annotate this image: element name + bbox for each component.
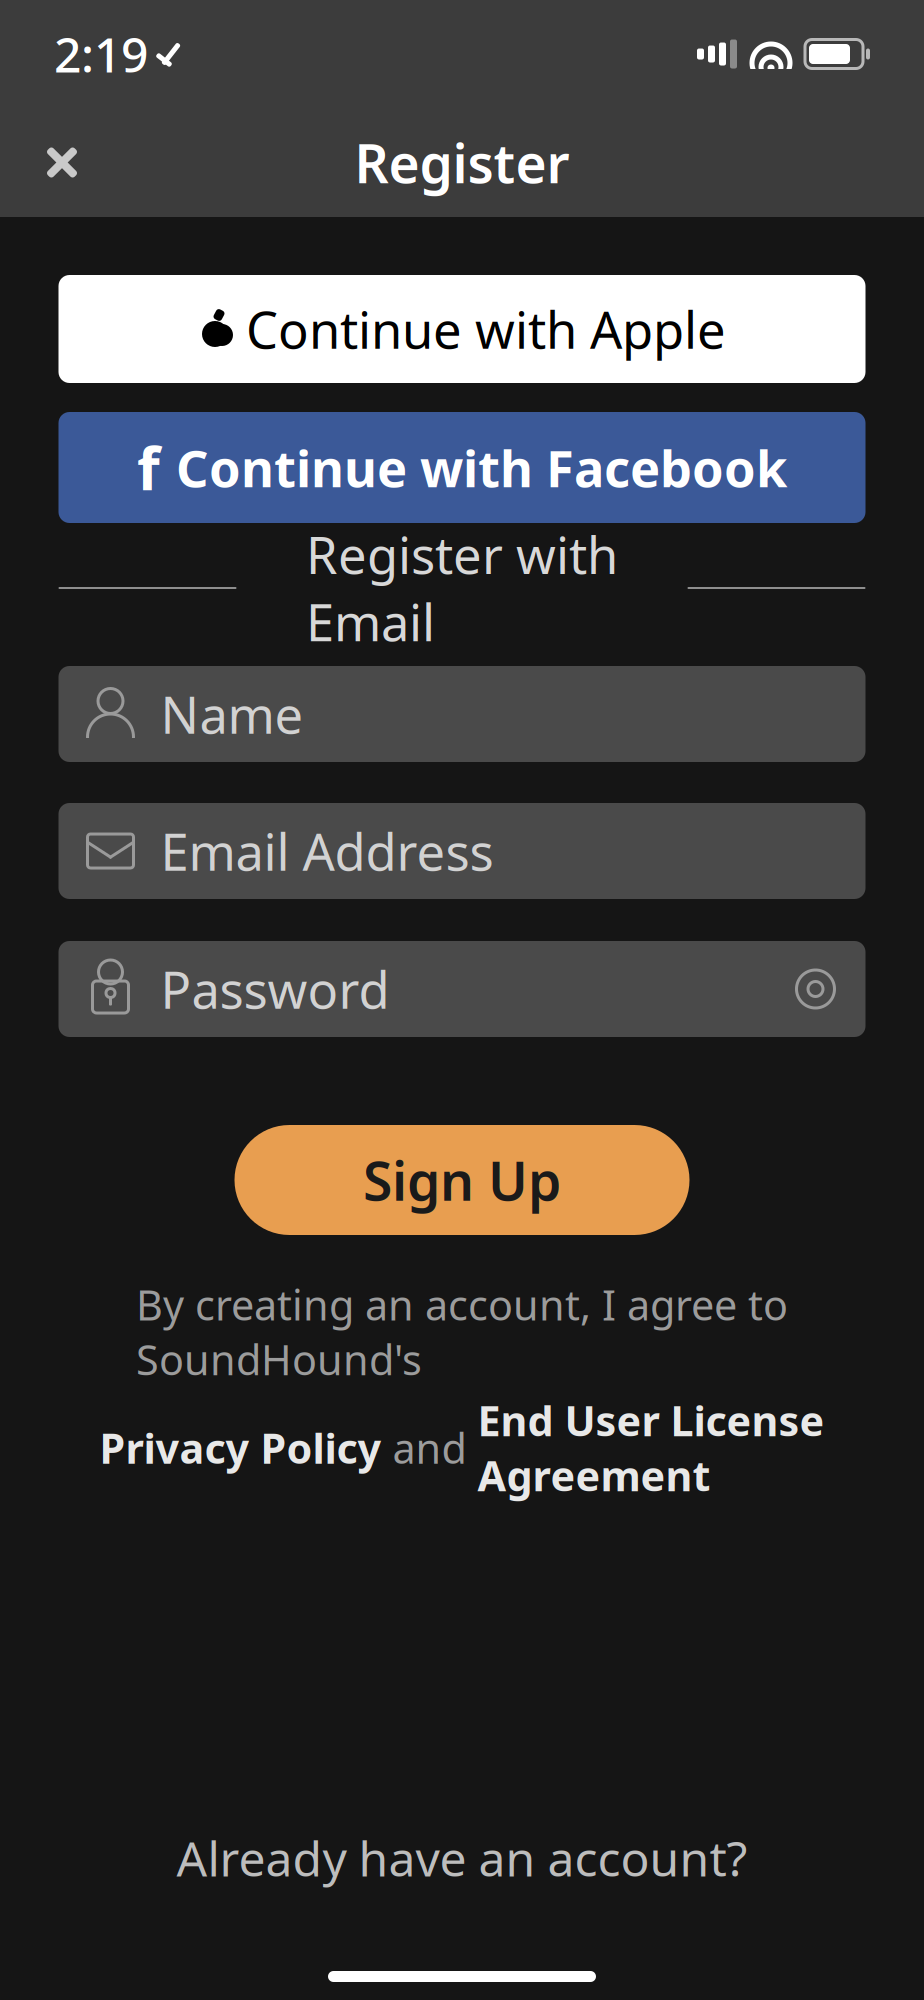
- staticText: Continue with Apple: [246, 295, 726, 363]
- button[interactable]: End User License Agreement: [477, 1393, 824, 1503]
- staticText: Continue with Facebook: [176, 434, 787, 501]
- staticText: Name: [160, 680, 303, 748]
- staticText: Password: [160, 955, 389, 1023]
- button[interactable]: f: [58, 412, 865, 523]
- staticText: and: [381, 1420, 477, 1475]
- staticText: Register: [354, 127, 569, 198]
- staticText: f: [137, 428, 160, 506]
- button[interactable]: Name: [58, 666, 865, 762]
- staticText: By creating an account, I agree to Sound…: [136, 1277, 788, 1387]
- button[interactable]: Email Address: [58, 803, 865, 899]
- staticText: Privacy Policy: [99, 1420, 381, 1475]
- staticText: Sign Up: [363, 1145, 561, 1215]
- staticText: End User License Agreement: [477, 1393, 824, 1503]
- button[interactable]: Privacy Policy: [99, 1420, 381, 1475]
- staticText: Register with Email: [306, 521, 618, 655]
- button[interactable]: Already have an account?: [162, 1823, 762, 1893]
- button[interactable]: Sign Up: [234, 1125, 689, 1235]
- button[interactable]: Close: [16, 116, 108, 208]
- button[interactable]: Continue with Apple: [58, 275, 865, 383]
- staticText: Already have an account?: [176, 1826, 747, 1890]
- staticText: 2:19: [54, 22, 148, 86]
- button[interactable]: Password: [58, 941, 865, 1037]
- staticText: Email Address: [160, 817, 493, 885]
